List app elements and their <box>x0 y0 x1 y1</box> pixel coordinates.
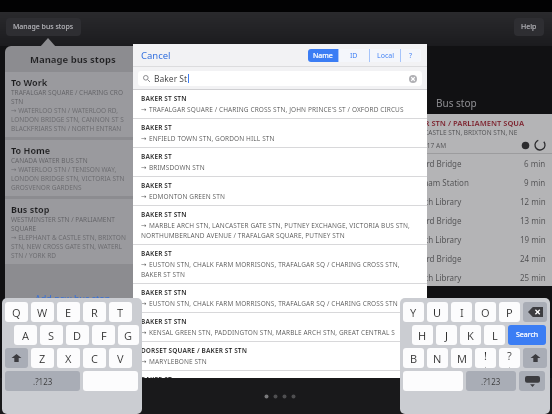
button[interactable]: Add new bus stop <box>5 292 141 308</box>
button[interactable]: Delete <box>523 302 547 322</box>
button[interactable]: A <box>14 325 37 345</box>
staticText: BAKER ST STN <box>141 288 187 297</box>
staticText: BAKER ST <box>141 123 172 132</box>
button[interactable]: Q <box>5 302 28 322</box>
button[interactable]: O <box>475 302 496 322</box>
button[interactable]: BAKER ST <box>133 245 427 283</box>
staticText: → <box>141 357 149 366</box>
button[interactable]: T <box>109 302 132 322</box>
button[interactable]: BAKER ST <box>133 177 427 205</box>
button[interactable]: P <box>499 302 520 322</box>
button[interactable]: W <box>31 302 54 322</box>
button[interactable]: Y <box>403 302 424 322</box>
staticText: Y <box>410 305 417 320</box>
staticText: BAKER ST <box>141 181 172 190</box>
button[interactable]: D <box>66 325 89 345</box>
staticText: EDMONTON GREEN STN <box>149 192 226 201</box>
button[interactable]: To Home <box>5 140 141 196</box>
button[interactable]: wich Library <box>416 192 552 211</box>
staticText: 6 min <box>524 158 546 169</box>
button[interactable]: Bus stop <box>5 199 141 264</box>
button[interactable]: F <box>92 325 115 345</box>
staticText: N <box>433 351 442 366</box>
staticText: → <box>141 221 149 230</box>
staticText: To Work <box>11 76 48 88</box>
staticText: → <box>141 134 149 143</box>
button[interactable]: Space <box>83 371 138 391</box>
button[interactable]: Local <box>370 49 400 62</box>
button[interactable]: H <box>412 325 433 345</box>
staticText: Search <box>516 330 539 340</box>
button[interactable]: K <box>460 325 481 345</box>
button[interactable]: I <box>451 302 472 322</box>
staticText: MARBLE ARCH STN, LANCASTER GATE STN, PUT… <box>149 221 410 230</box>
staticText: P <box>506 305 513 320</box>
button[interactable]: Clear text <box>409 75 417 83</box>
button[interactable]: Baker St <box>138 71 422 86</box>
staticText: K <box>467 328 474 343</box>
button[interactable]: wich Library <box>416 268 552 286</box>
button[interactable]: Manage bus stops <box>6 18 81 36</box>
button[interactable]: Refresh <box>532 137 548 153</box>
button[interactable]: ? <box>499 348 520 368</box>
button[interactable]: Help <box>514 18 544 36</box>
button[interactable]: ? <box>401 49 421 62</box>
button[interactable]: E <box>57 302 80 322</box>
button[interactable]: G <box>118 325 139 345</box>
button[interactable]: B <box>403 348 424 368</box>
staticText: G <box>124 328 133 343</box>
staticText: tford Bridge <box>416 215 462 226</box>
staticText: BAKER ST STN <box>141 210 187 219</box>
button[interactable]: .?123 <box>466 371 516 391</box>
button[interactable]: BAKER ST STN <box>133 284 427 312</box>
staticText: Bus stop <box>436 96 477 110</box>
button[interactable]: Cancel <box>133 46 179 65</box>
button[interactable]: BAKER ST STN <box>133 90 427 118</box>
staticText: BAKER ST STN <box>141 317 187 326</box>
button[interactable]: ! <box>475 348 496 368</box>
staticText: 24 min <box>520 253 546 264</box>
button[interactable]: V <box>109 348 132 368</box>
staticText: MARYLEBONE STN <box>149 357 207 366</box>
staticText: KENSAL GREEN STN, PADDINGTON STN, MARBLE… <box>149 328 395 337</box>
button[interactable]: U <box>427 302 448 322</box>
button[interactable]: Hide keyboard <box>519 371 545 391</box>
button[interactable]: BAKER ST <box>133 371 427 384</box>
button[interactable]: .?123 <box>5 371 80 391</box>
button[interactable]: Share on Twitter <box>518 138 532 152</box>
staticText: Add new bus stop <box>35 292 111 304</box>
button[interactable]: tford Bridge <box>416 211 552 230</box>
button[interactable]: X <box>57 348 80 368</box>
button[interactable]: L <box>484 325 505 345</box>
button[interactable]: J <box>436 325 457 345</box>
staticText: BRIMSDOWN STN <box>149 163 205 172</box>
button[interactable]: tford Bridge <box>416 249 552 268</box>
button[interactable]: Z <box>31 348 54 368</box>
staticText: .?123 <box>481 376 501 387</box>
staticText: ! <box>484 348 487 363</box>
button[interactable]: Name <box>308 49 338 62</box>
button[interactable]: BAKER ST <box>133 148 427 176</box>
button[interactable]: wich Library <box>416 230 552 249</box>
staticText: T <box>117 305 124 320</box>
button[interactable]: M <box>451 348 472 368</box>
staticText: R <box>91 305 98 320</box>
staticText: BAKER ST STN <box>141 94 187 103</box>
button[interactable]: DORSET SQUARE / BAKER ST STN <box>133 342 427 370</box>
button[interactable]: Shift <box>523 348 547 368</box>
button[interactable]: S <box>40 325 63 345</box>
button[interactable]: atham Station <box>416 173 552 192</box>
button[interactable]: Shift <box>5 348 28 368</box>
button[interactable]: N <box>427 348 448 368</box>
button[interactable]: tford Bridge <box>416 154 552 173</box>
button[interactable]: R <box>83 302 106 322</box>
button[interactable]: To Work <box>5 72 141 137</box>
staticText: L <box>492 328 498 343</box>
button[interactable]: C <box>83 348 106 368</box>
button[interactable]: BAKER ST <box>133 119 427 147</box>
button[interactable]: Search <box>508 325 546 345</box>
button[interactable]: BAKER ST STN <box>133 313 427 341</box>
button[interactable]: BAKER ST STN <box>133 206 427 244</box>
button[interactable]: ID <box>339 49 369 62</box>
